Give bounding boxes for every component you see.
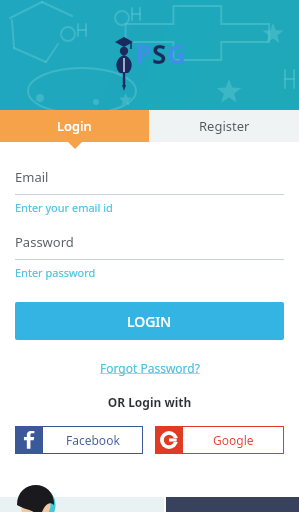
staticText: Google [213,432,254,448]
button[interactable]: LOGIN [15,302,284,340]
button[interactable]: Sign in with Google [155,426,284,454]
staticText: Password [15,233,74,251]
staticText: Forgot Password? [100,360,200,376]
staticText: P [135,36,152,71]
button[interactable]: Sign in with Facebook [15,426,143,454]
button[interactable]: Forgot Password? [100,360,200,376]
staticText: Enter your email id [15,200,113,215]
staticText: LOGIN [127,312,172,331]
staticText: OR Login with [15,394,284,410]
staticText: Enter password [15,265,96,280]
staticText: Email [15,168,49,186]
staticText: Login [57,117,92,135]
button[interactable]: Register [149,110,299,142]
button[interactable]: Login [0,110,149,142]
staticText: S [152,36,167,71]
staticText: Register [199,117,250,135]
staticText: G [167,36,186,71]
staticText: Facebook [66,432,120,448]
